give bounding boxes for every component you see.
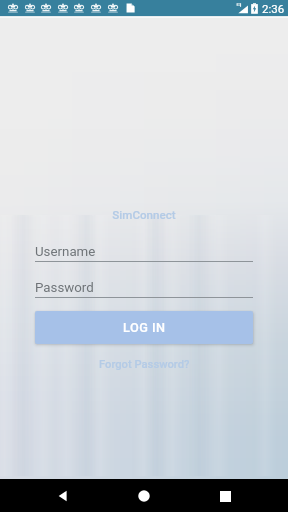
staticText: Username <box>35 244 96 260</box>
button[interactable]: Password <box>35 280 253 299</box>
staticText: Forgot Password? <box>99 358 190 371</box>
button[interactable]: LOG IN <box>35 311 253 344</box>
button[interactable]: Back <box>48 481 78 511</box>
staticText: 2:36 <box>262 2 285 15</box>
staticText: Password <box>35 280 94 296</box>
button[interactable]: Username <box>35 244 253 263</box>
staticText: SimConnect <box>112 208 176 222</box>
button[interactable]: Home <box>129 481 159 511</box>
staticText: LOG IN <box>123 320 166 335</box>
button[interactable]: Forgot Password? <box>93 356 196 373</box>
button[interactable]: Recent apps <box>210 481 240 511</box>
